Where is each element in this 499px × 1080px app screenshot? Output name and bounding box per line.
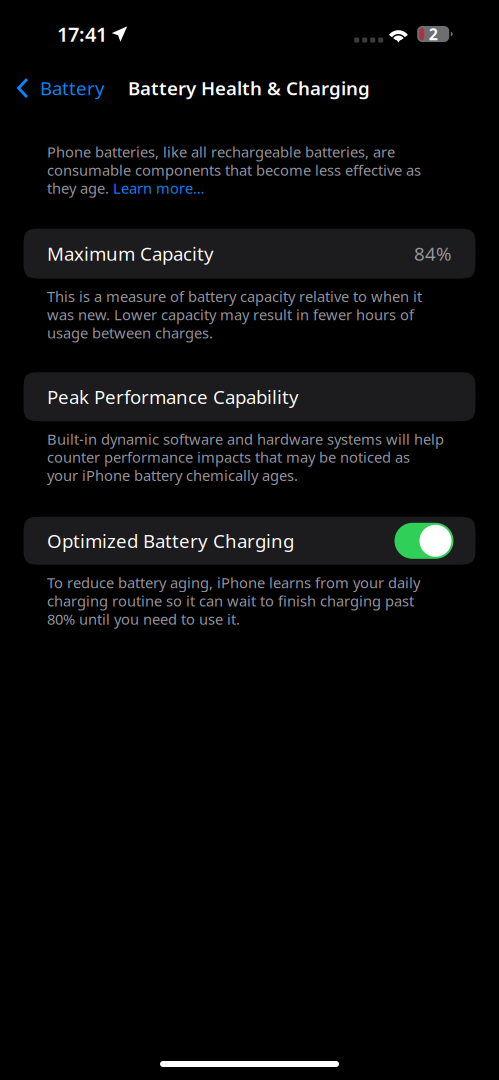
staticText: usage between charges.	[47, 323, 213, 342]
staticText: 2	[429, 23, 438, 45]
staticText: Maximum Capacity	[47, 241, 214, 266]
staticText: Learn more…	[113, 178, 205, 198]
button[interactable]: Optimized Battery Charging	[0, 517, 499, 565]
staticText: Peak Performance Capability	[47, 384, 299, 409]
button[interactable]: Battery	[0, 68, 114, 108]
staticText: Battery	[40, 76, 105, 100]
staticText: counter performance impacts that may be …	[47, 447, 410, 467]
button[interactable]: Learn more…	[113, 178, 205, 198]
staticText: Battery Health & Charging	[128, 76, 370, 100]
staticText: 17:41	[57, 21, 107, 47]
staticText: Built-in dynamic software and hardware s…	[47, 429, 444, 449]
staticText: To reduce battery aging, iPhone learns f…	[47, 573, 420, 592]
staticText: This is a measure of battery capacity re…	[47, 287, 422, 306]
staticText: Phone batteries, like all rechargeable b…	[47, 142, 395, 161]
staticText: they age.	[47, 178, 113, 198]
staticText: consumable components that become less e…	[47, 160, 421, 180]
button[interactable]: Maximum Capacity	[0, 229, 499, 279]
staticText: Optimized Battery Charging	[47, 528, 294, 553]
staticText: 80% until you need to use it.	[47, 609, 240, 629]
button[interactable]: Peak Performance Capability	[0, 372, 499, 421]
staticText: your iPhone battery chemically ages.	[47, 466, 298, 485]
staticText: charging routine so it can wait to finis…	[47, 591, 414, 610]
staticText: was new. Lower capacity may result in fe…	[47, 305, 414, 324]
staticText: 84%	[414, 241, 452, 266]
